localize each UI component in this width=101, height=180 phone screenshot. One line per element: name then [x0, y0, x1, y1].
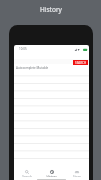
staticText: Autocomplete Mutable: [16, 66, 49, 70]
button[interactable]: [14, 148, 89, 156]
staticText: Stops: [73, 175, 81, 177]
button[interactable]: [14, 108, 89, 116]
button[interactable]: [14, 156, 89, 164]
button[interactable]: [14, 132, 89, 140]
button[interactable]: SEARCH: [73, 60, 88, 65]
staticText: History: [40, 5, 62, 14]
button[interactable]: [14, 59, 89, 64]
button[interactable]: [14, 92, 89, 100]
staticText: Search: [22, 175, 32, 177]
button[interactable]: [14, 124, 89, 132]
staticText: SEARCH: [75, 61, 87, 65]
button[interactable]: History: [39, 159, 64, 177]
button[interactable]: Search: [14, 159, 39, 177]
staticText: 10:05: [19, 47, 27, 51]
button[interactable]: [14, 84, 89, 92]
button[interactable]: [14, 76, 89, 84]
button[interactable]: [14, 100, 89, 108]
button[interactable]: Stops: [64, 159, 89, 177]
staticText: History: [46, 175, 57, 177]
button[interactable]: [14, 116, 89, 124]
button[interactable]: [14, 140, 89, 148]
